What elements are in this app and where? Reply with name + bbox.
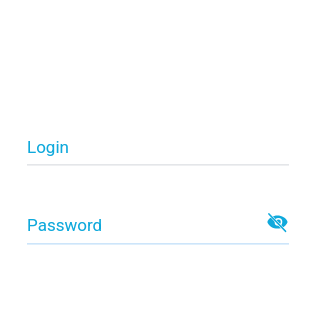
button[interactable]: Login [0,132,320,166]
staticText: Password [27,215,103,235]
button[interactable]: Password [0,210,320,245]
button[interactable]: Show password [266,213,289,234]
staticText: Login [27,137,69,157]
